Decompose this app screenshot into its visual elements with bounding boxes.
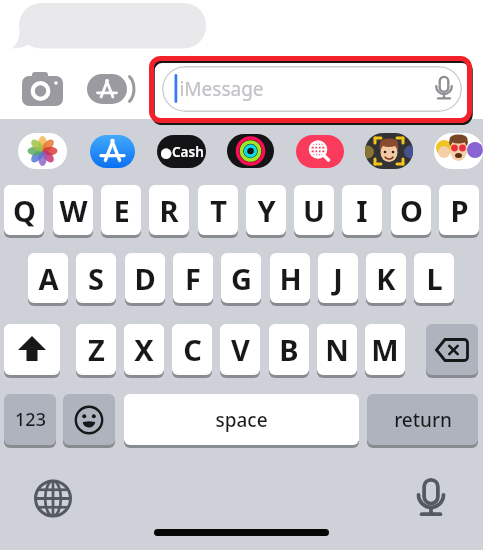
button[interactable]: G: [221, 253, 261, 303]
staticText: X: [134, 330, 154, 369]
button[interactable]: [4, 324, 60, 375]
button[interactable]: S: [76, 253, 116, 303]
button[interactable]: I: [342, 185, 382, 235]
staticText: J: [333, 259, 343, 298]
button[interactable]: M: [365, 324, 405, 375]
staticText: U: [303, 191, 325, 230]
staticText: Y: [257, 191, 276, 230]
button[interactable]: [365, 133, 413, 169]
button[interactable]: [296, 135, 344, 168]
button[interactable]: H: [270, 253, 310, 303]
staticText: F: [185, 259, 201, 298]
button[interactable]: V: [220, 324, 260, 375]
button[interactable]: Y: [246, 185, 286, 235]
staticText: A: [38, 259, 59, 298]
button[interactable]: space: [124, 394, 359, 445]
button[interactable]: iMessage: [162, 66, 462, 112]
button[interactable]: B: [269, 324, 309, 375]
button[interactable]: C: [172, 324, 212, 375]
button[interactable]: O: [391, 185, 431, 235]
staticText: space: [215, 407, 268, 433]
staticText: M: [371, 330, 399, 369]
button[interactable]: [20, 70, 66, 108]
button[interactable]: [412, 476, 450, 518]
button[interactable]: K: [366, 253, 406, 303]
button[interactable]: X: [124, 324, 164, 375]
button[interactable]: [18, 133, 67, 169]
button[interactable]: T: [198, 185, 238, 235]
staticText: V: [231, 330, 250, 369]
button[interactable]: R: [149, 185, 189, 235]
staticText: N: [325, 330, 349, 369]
staticText: K: [376, 259, 396, 298]
staticText: return: [394, 407, 452, 433]
button[interactable]: P: [439, 185, 479, 235]
button[interactable]: [434, 133, 483, 169]
button[interactable]: ●Cash: [157, 135, 206, 168]
staticText: W: [59, 191, 88, 230]
staticText: C: [183, 330, 202, 369]
staticText: H: [279, 259, 302, 298]
staticText: 123: [15, 407, 46, 432]
staticText: S: [88, 259, 104, 298]
staticText: D: [134, 259, 156, 298]
staticText: G: [231, 259, 252, 298]
button[interactable]: [63, 394, 115, 445]
staticText: B: [279, 330, 299, 369]
staticText: I: [356, 191, 368, 230]
button[interactable]: Q: [4, 185, 44, 235]
button[interactable]: L: [414, 253, 454, 303]
staticText: ●Cash: [160, 143, 204, 161]
button[interactable]: U: [294, 185, 334, 235]
button[interactable]: D: [125, 253, 165, 303]
button[interactable]: J: [318, 253, 358, 303]
button[interactable]: W: [53, 185, 93, 235]
staticText: L: [426, 259, 443, 298]
button[interactable]: [227, 134, 274, 168]
button[interactable]: [87, 74, 137, 105]
button[interactable]: 123: [4, 394, 56, 445]
button[interactable]: [33, 479, 73, 519]
staticText: Z: [88, 330, 105, 369]
staticText: T: [210, 191, 227, 230]
button[interactable]: N: [317, 324, 357, 375]
staticText: Q: [13, 191, 36, 230]
staticText: O: [400, 191, 423, 230]
button[interactable]: E: [101, 185, 141, 235]
button[interactable]: [426, 324, 478, 375]
button[interactable]: [90, 135, 135, 168]
button[interactable]: F: [173, 253, 213, 303]
button[interactable]: return: [367, 394, 478, 445]
staticText: P: [450, 191, 469, 230]
button[interactable]: Z: [76, 324, 116, 375]
staticText: iMessage: [179, 76, 264, 102]
button[interactable]: A: [28, 253, 68, 303]
staticText: E: [113, 191, 130, 230]
staticText: R: [159, 191, 179, 230]
